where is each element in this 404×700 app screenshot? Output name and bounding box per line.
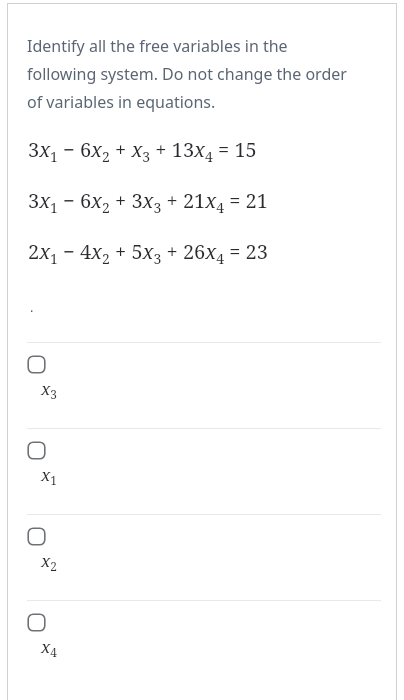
other: Select x3	[27, 355, 46, 374]
other: Select x2	[27, 527, 46, 546]
staticText: .	[30, 298, 34, 316]
button[interactable]: Select x1	[7, 429, 397, 514]
button[interactable]: Select x3	[7, 343, 397, 428]
staticText: Identify all the free variables in the f…	[27, 35, 359, 113]
other: Select x1	[27, 441, 46, 460]
staticText: x1	[41, 463, 57, 488]
staticText: x4	[41, 635, 57, 660]
button[interactable]: Select x2	[7, 515, 397, 600]
staticText: x3	[41, 377, 57, 402]
other: Select x4	[27, 613, 46, 632]
staticText: 3x1 − 6x2 + 3x3 + 21x4 = 21	[28, 187, 268, 217]
staticText: 3x1 − 6x2 + x3 + 13x4 = 15	[28, 136, 257, 166]
button[interactable]: Select x4	[7, 601, 397, 686]
staticText: 2x1 − 4x2 + 5x3 + 26x4 = 23	[28, 238, 268, 268]
staticText: x2	[41, 549, 57, 574]
